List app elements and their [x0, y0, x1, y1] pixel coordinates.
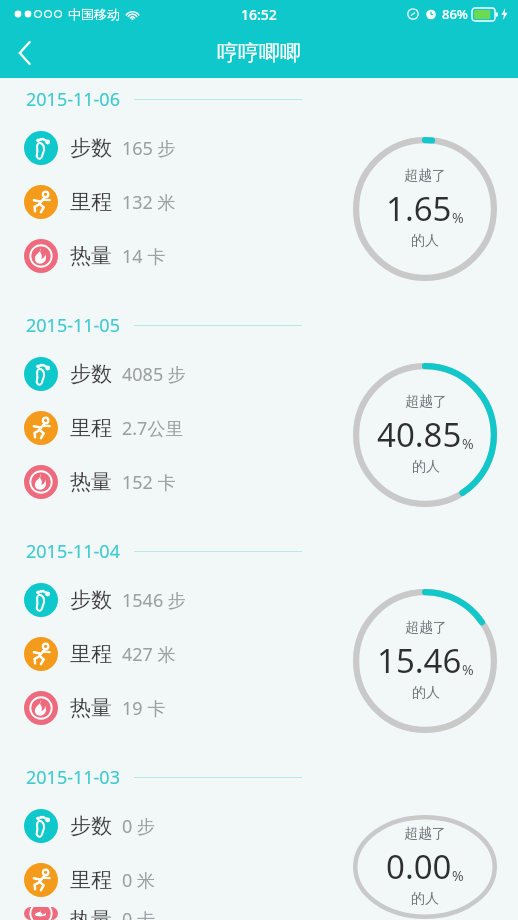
staticText: 热量 [70, 695, 112, 721]
staticText: % [462, 660, 474, 679]
staticText: 14 卡 [122, 244, 166, 269]
staticText: 132 米 [122, 190, 176, 215]
staticText: 步数 [70, 135, 112, 161]
button[interactable]: 步数 [0, 121, 518, 175]
staticText: % [452, 208, 464, 227]
staticText: 2015-11-04 [26, 539, 120, 564]
button[interactable]: Back [0, 28, 50, 78]
staticText: 15.46 [377, 638, 462, 683]
staticText: 的人 [411, 890, 439, 908]
button[interactable]: 热量 [0, 455, 518, 509]
staticText: 超越了 [404, 825, 446, 843]
staticText: 0 卡 [122, 907, 155, 920]
staticText: 热量 [70, 469, 112, 495]
staticText: 步数 [70, 361, 112, 387]
staticText: 的人 [411, 232, 439, 250]
staticText: 2015-11-03 [26, 765, 120, 790]
staticText: 热量 [70, 907, 112, 920]
staticText: 步数 [70, 587, 112, 613]
staticText: 的人 [412, 684, 440, 702]
staticText: 1546 步 [122, 588, 186, 613]
staticText: 1.65 [386, 186, 452, 231]
staticText: 里程 [70, 641, 112, 667]
button[interactable]: 里程 [0, 627, 518, 681]
staticText: 0.00 [386, 844, 452, 889]
button[interactable]: 热量 [0, 907, 518, 920]
staticText: 2015-11-06 [26, 87, 120, 112]
staticText: 165 步 [122, 136, 176, 161]
button[interactable]: 超越了 [352, 588, 498, 734]
staticText: 152 卡 [122, 470, 176, 495]
staticText: 哼哼唧唧 [217, 40, 301, 66]
button[interactable]: 超越了 [352, 136, 498, 282]
button[interactable]: 超越了 [352, 814, 498, 920]
staticText: 里程 [70, 189, 112, 215]
staticText: 0 步 [122, 814, 155, 839]
staticText: 超越了 [404, 167, 446, 185]
staticText: 19 卡 [122, 696, 166, 721]
staticText: 的人 [412, 458, 440, 476]
staticText: 427 米 [122, 642, 176, 667]
button[interactable]: 热量 [0, 681, 518, 735]
staticText: 超越了 [405, 393, 447, 411]
button[interactable]: 超越了 [352, 362, 498, 508]
staticText: 40.85 [377, 412, 462, 457]
staticText: 0 米 [122, 868, 155, 893]
button[interactable]: 步数 [0, 347, 518, 401]
button[interactable]: 步数 [0, 799, 518, 853]
staticText: 4085 步 [122, 362, 186, 387]
staticText: 86% [442, 5, 468, 23]
staticText: 里程 [70, 867, 112, 893]
staticText: 中国移动 [68, 6, 120, 22]
staticText: 2015-11-05 [26, 313, 120, 338]
staticText: % [452, 866, 464, 885]
staticText: 步数 [70, 813, 112, 839]
button[interactable]: 步数 [0, 573, 518, 627]
button[interactable]: 里程 [0, 401, 518, 455]
button[interactable]: 里程 [0, 853, 518, 907]
button[interactable]: 热量 [0, 229, 518, 283]
staticText: % [462, 434, 474, 453]
staticText: 里程 [70, 415, 112, 441]
button[interactable]: 里程 [0, 175, 518, 229]
staticText: 热量 [70, 243, 112, 269]
staticText: 16:52 [241, 5, 277, 24]
staticText: 超越了 [405, 619, 447, 637]
staticText: 2.7公里 [122, 416, 184, 441]
